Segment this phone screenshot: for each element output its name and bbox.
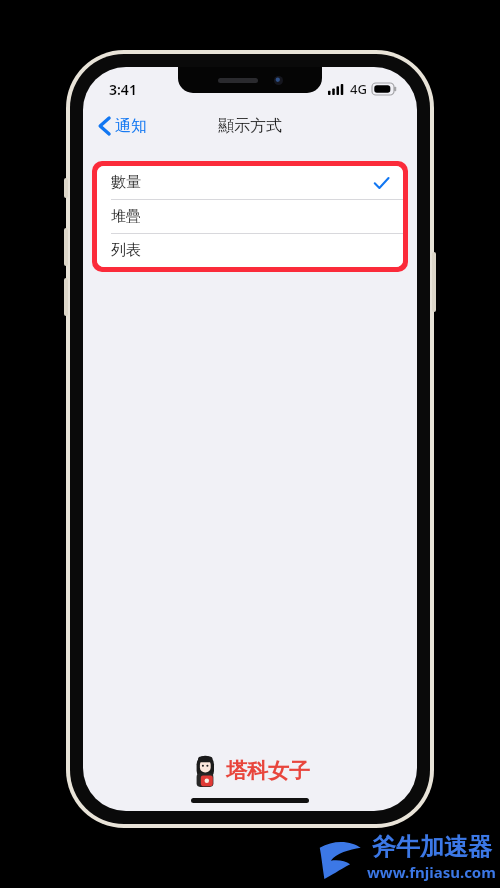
staticText: www.fnjiasu.com: [367, 862, 496, 882]
staticText: 3:41: [109, 80, 137, 99]
button[interactable]: 列表: [97, 234, 403, 267]
staticText: 列表: [111, 241, 141, 260]
staticText: 斧牛加速器: [372, 832, 492, 862]
staticText: 顯示方式: [218, 116, 282, 136]
staticText: 4G: [350, 80, 367, 98]
staticText: 塔科女子: [226, 758, 310, 784]
button[interactable]: 堆疊: [97, 200, 403, 234]
staticText: 通知: [115, 116, 147, 136]
staticText: 數量: [111, 173, 141, 192]
staticText: 堆疊: [111, 207, 141, 226]
button[interactable]: 通知: [93, 112, 153, 140]
button[interactable]: 數量: [97, 166, 403, 200]
